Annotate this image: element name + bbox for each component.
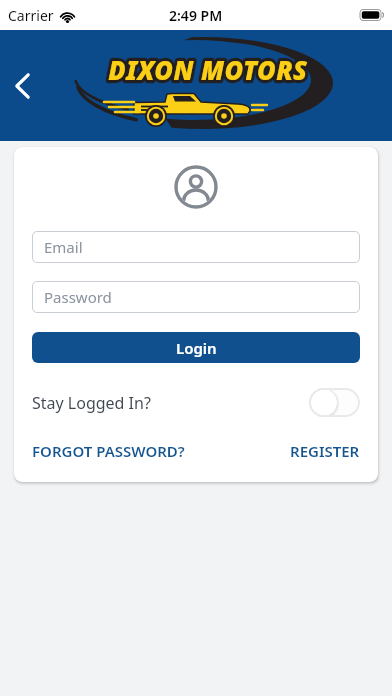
button[interactable]: FORGOT PASSWORD?	[32, 441, 185, 461]
staticText: Stay Logged In?	[32, 392, 151, 414]
button[interactable]	[309, 388, 360, 417]
staticText: DIXON MOTORS	[108, 51, 308, 88]
button[interactable]: REGISTER	[290, 441, 360, 461]
staticText: Email	[44, 237, 83, 257]
staticText: Carrier	[8, 6, 54, 25]
button[interactable]: Email	[32, 231, 360, 263]
staticText: Password	[44, 287, 112, 307]
button[interactable]	[0, 64, 44, 108]
staticText: DIXON MOTORS	[108, 51, 308, 88]
staticText: 2:49 PM	[169, 6, 223, 25]
staticText: Login	[176, 338, 217, 358]
button[interactable]: Password	[32, 281, 360, 313]
button[interactable]: Login	[32, 332, 360, 363]
